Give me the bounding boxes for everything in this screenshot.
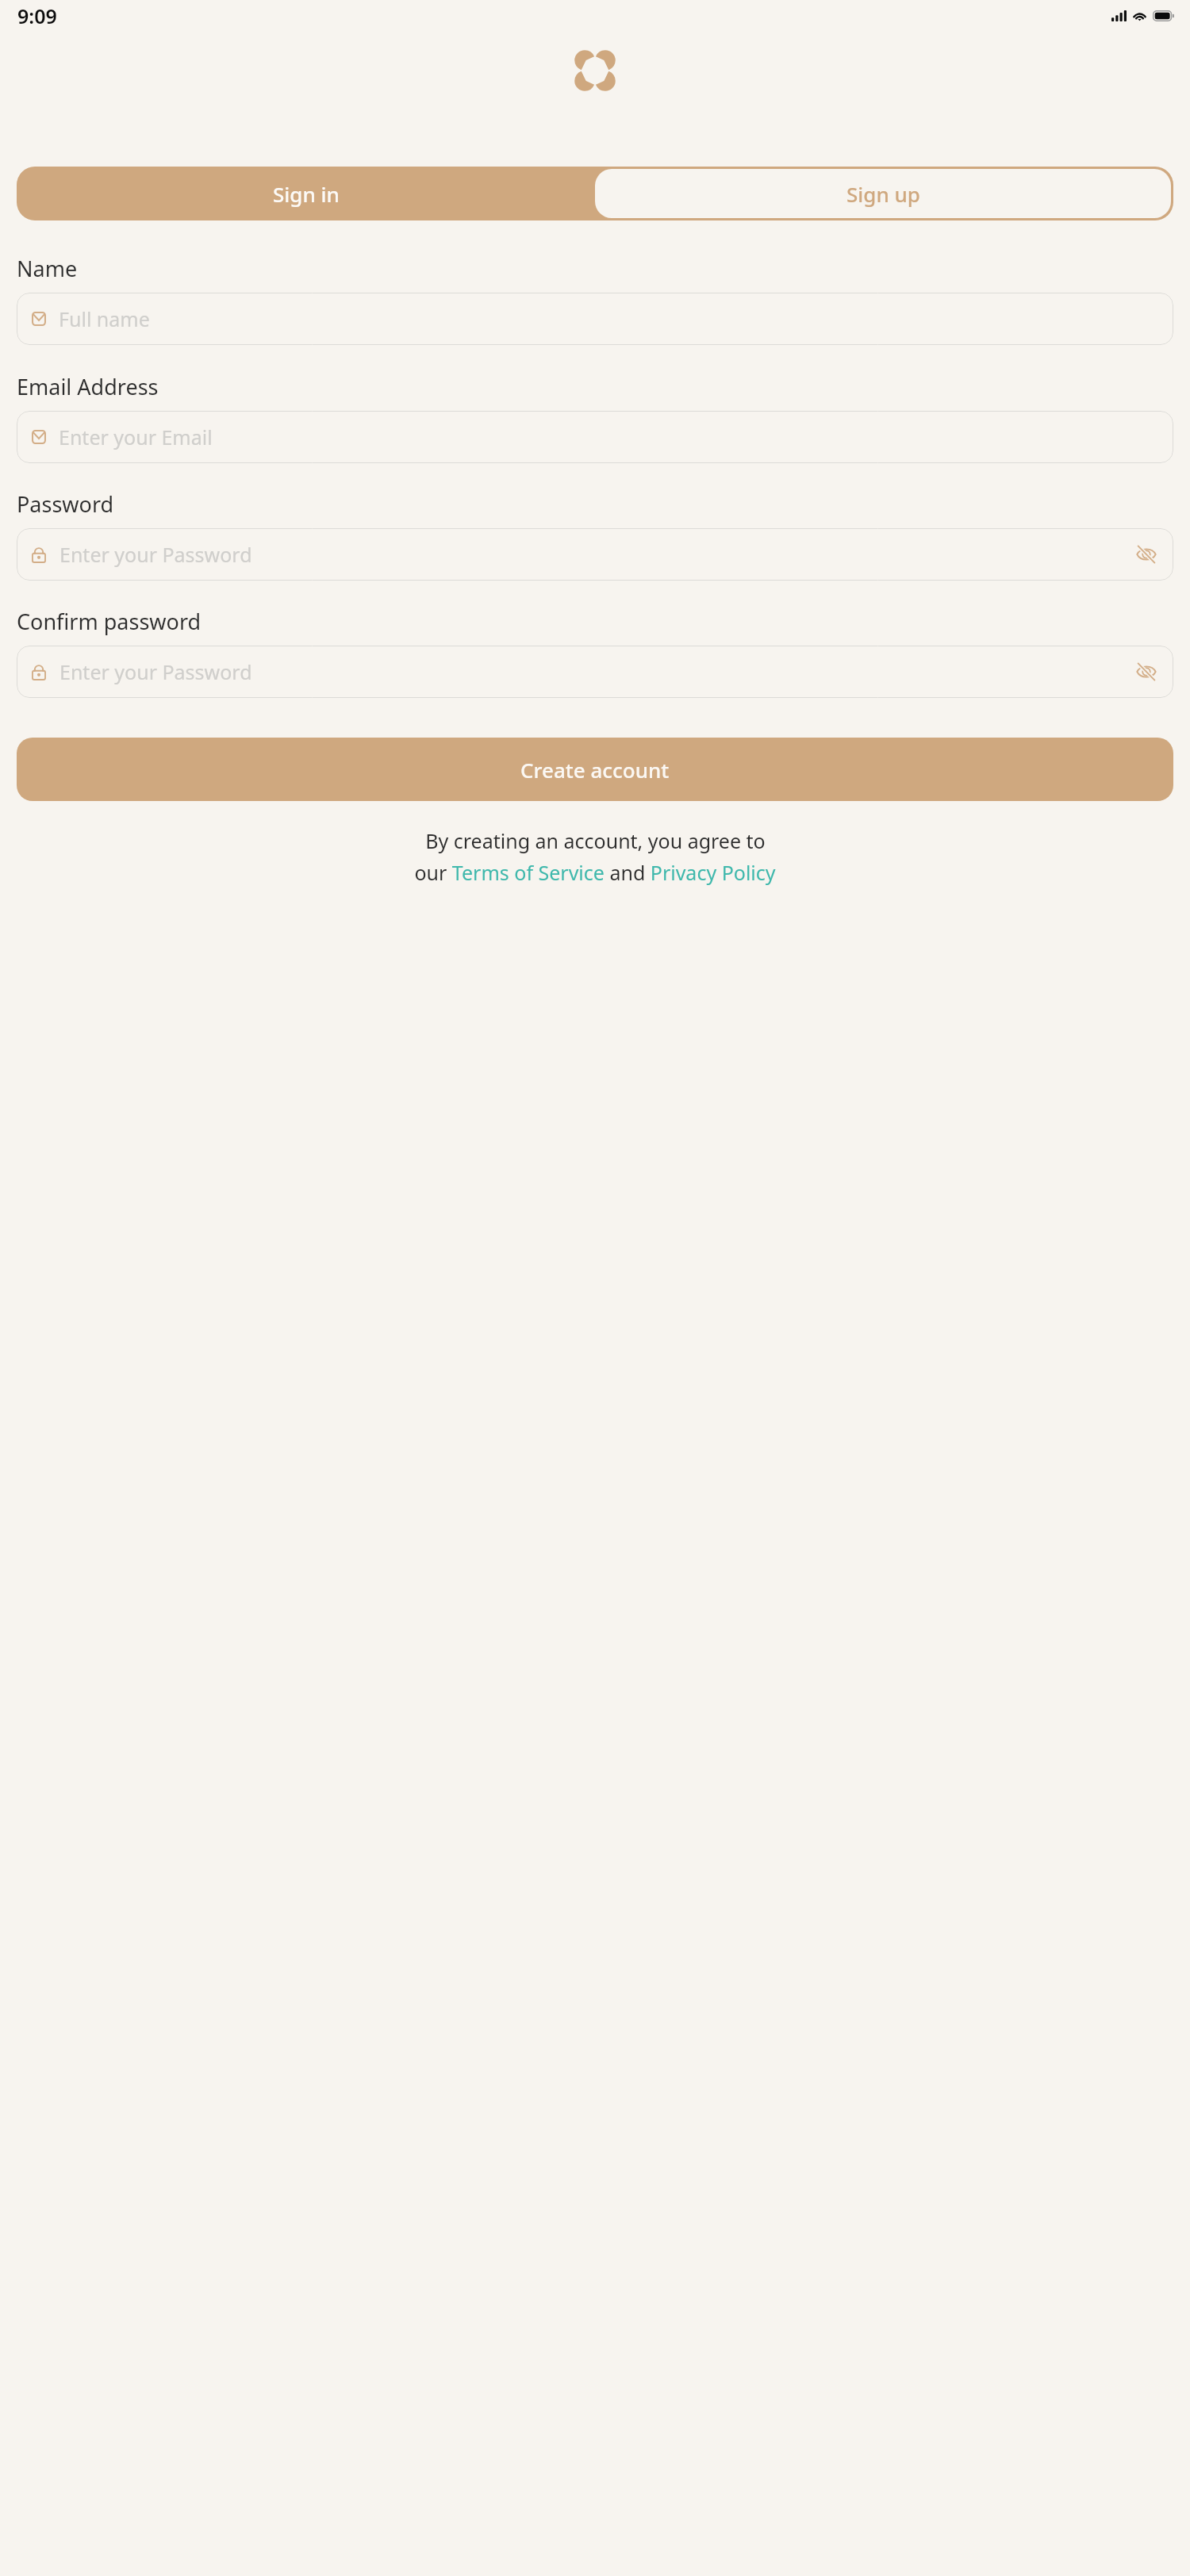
staticText: 9:09 [17, 2, 57, 29]
button[interactable]: our Terms of Service and Privacy Policy [414, 859, 776, 886]
staticText: Enter your Password [59, 541, 1134, 568]
staticText: Email Address [17, 372, 159, 401]
button[interactable]: Sign in [17, 167, 595, 220]
button[interactable]: Enter your Password [17, 646, 1173, 698]
button[interactable]: Sign up [595, 169, 1171, 218]
button[interactable]: Create account [17, 738, 1173, 801]
staticText: By creating an account, you agree to [425, 827, 766, 854]
staticText: Full name [59, 305, 1158, 332]
staticText: Name [17, 254, 78, 283]
staticText: our Terms of Service and Privacy Policy [414, 859, 776, 886]
staticText: Enter your Email [59, 424, 1158, 450]
staticText: Password [17, 489, 114, 519]
staticText: Sign in [273, 180, 340, 208]
staticText: Create account [520, 756, 670, 784]
staticText: Enter your Password [59, 658, 1134, 685]
staticText: Sign up [846, 180, 920, 208]
button[interactable]: Show password [1134, 660, 1158, 684]
button[interactable]: Show password [1134, 542, 1158, 566]
button[interactable]: Full name [17, 293, 1173, 345]
button[interactable]: Enter your Email [17, 411, 1173, 463]
staticText: Confirm password [17, 607, 202, 636]
button[interactable]: Enter your Password [17, 528, 1173, 581]
